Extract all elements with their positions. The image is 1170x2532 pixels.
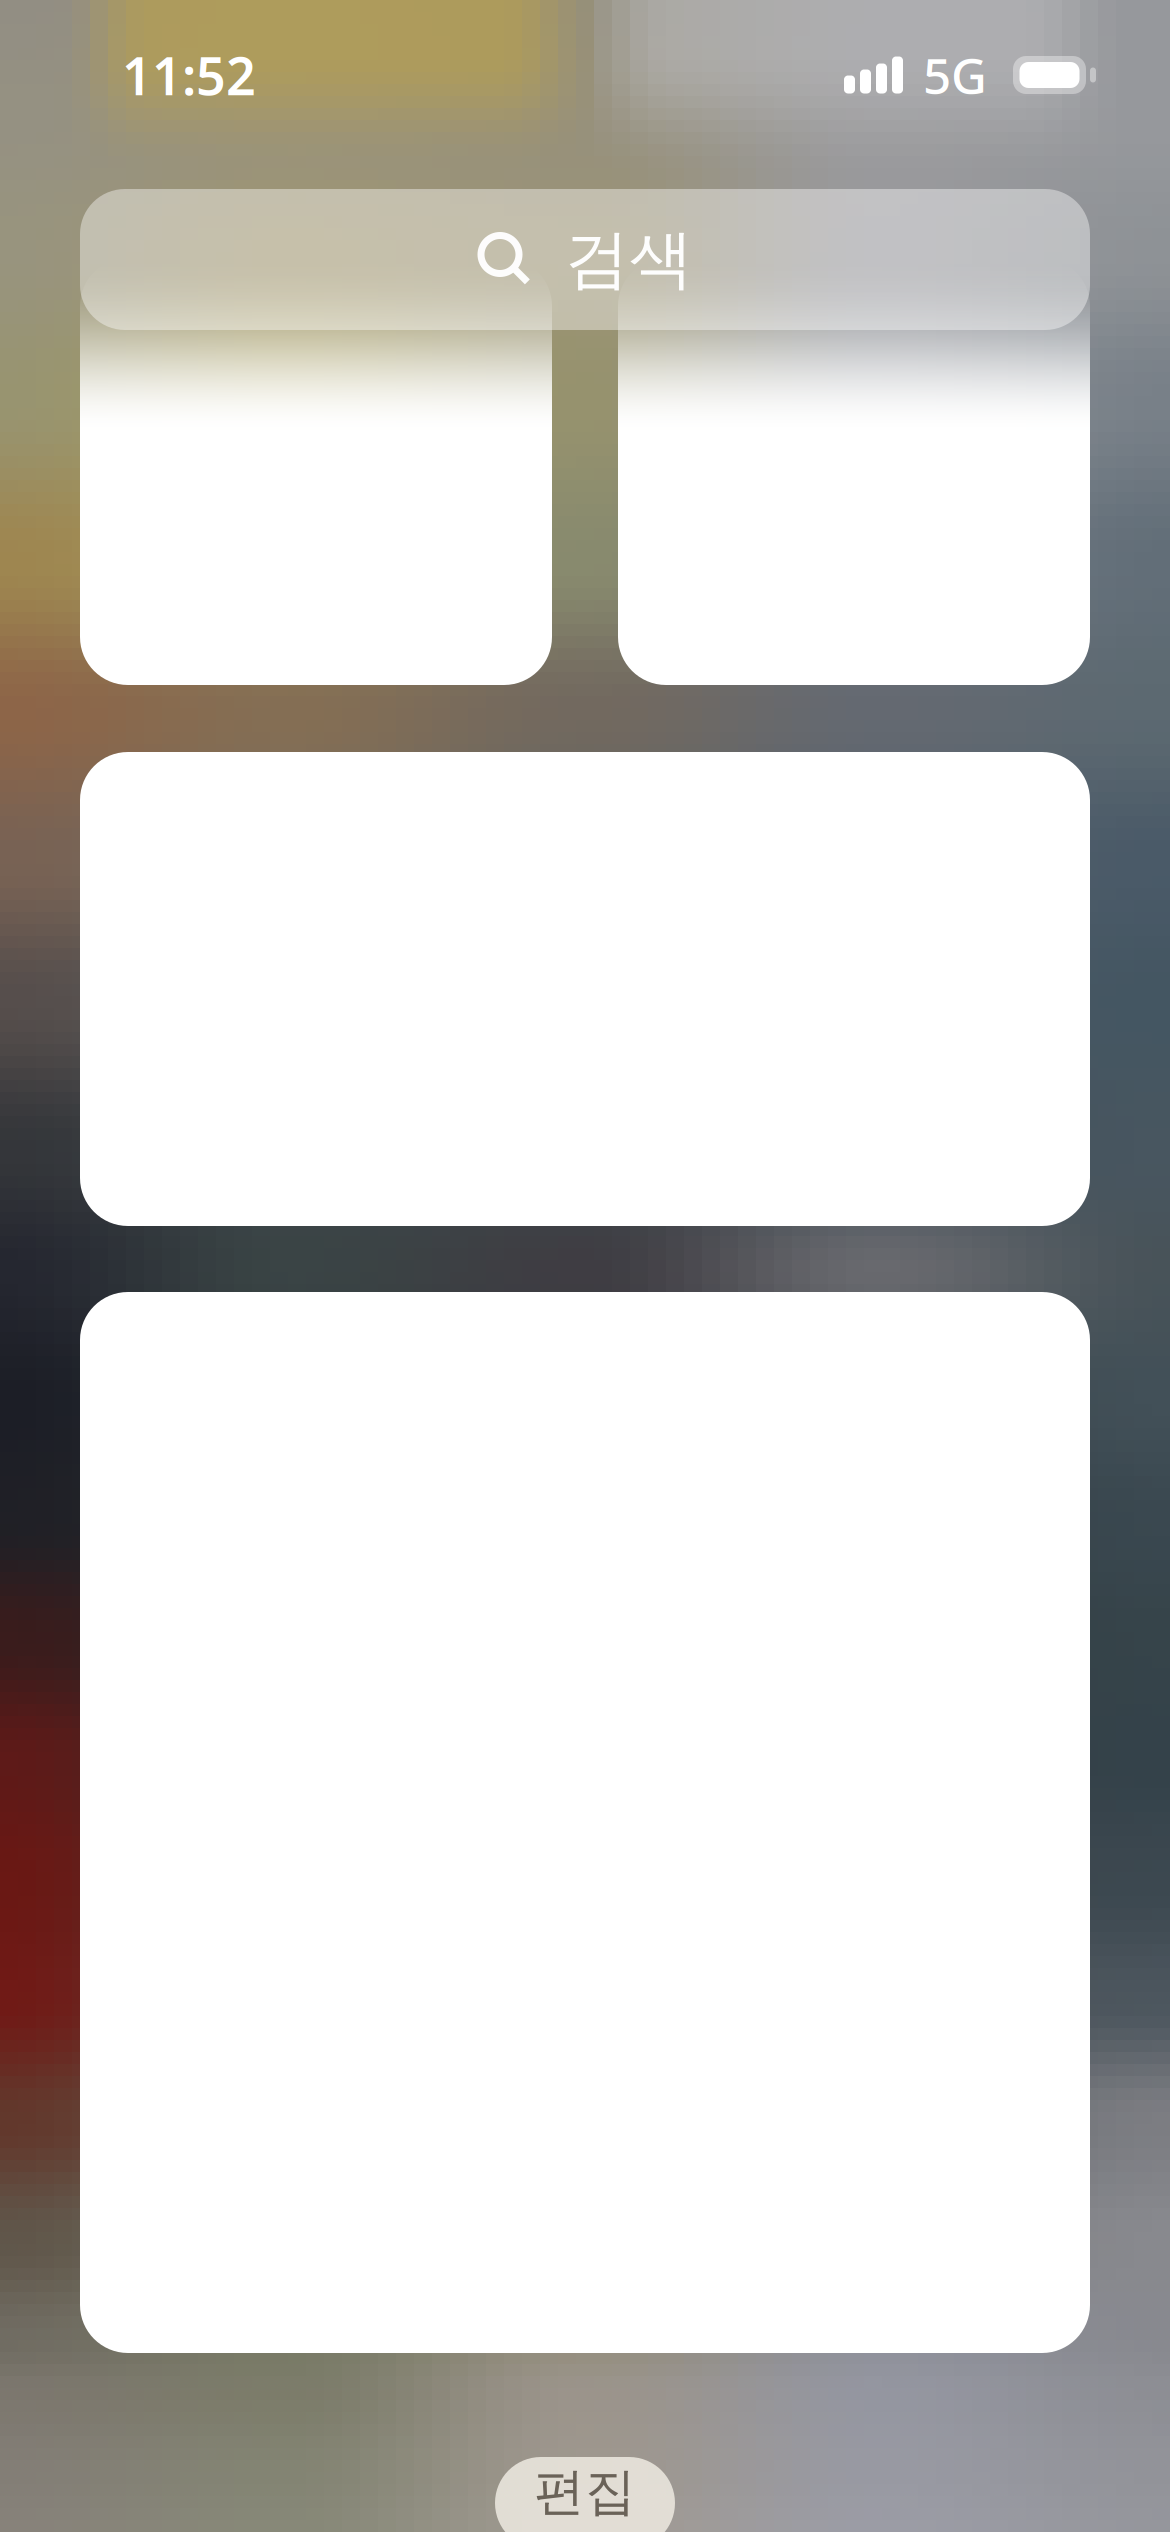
button[interactable]: Widget	[80, 258, 552, 685]
button[interactable]: Widget	[618, 258, 1090, 685]
button[interactable]: Widget	[80, 752, 1090, 1226]
button[interactable]: 편집	[495, 2457, 675, 2532]
staticText: 검색	[565, 220, 693, 299]
staticText: 11:52	[122, 40, 256, 110]
button[interactable]: 검색	[80, 189, 1090, 330]
staticText: 편집	[534, 2461, 636, 2523]
button[interactable]: Widget	[80, 1292, 1090, 2353]
staticText: 5G	[923, 42, 987, 108]
